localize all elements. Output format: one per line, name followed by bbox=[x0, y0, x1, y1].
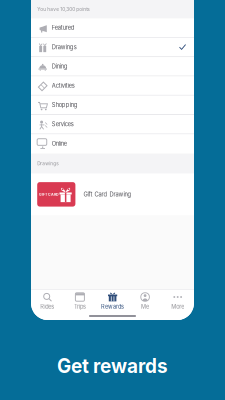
button[interactable]: GIFT CARD bbox=[31, 174, 194, 215]
staticText: More bbox=[171, 303, 184, 310]
staticText: Gift Card Drawing bbox=[83, 191, 131, 198]
button[interactable]: Trips bbox=[64, 290, 96, 312]
staticText: Rides bbox=[40, 303, 54, 310]
button[interactable]: Rides bbox=[31, 290, 64, 312]
staticText: GIFT CARD bbox=[39, 192, 59, 197]
staticText: Featured bbox=[52, 24, 75, 31]
button[interactable]: Services bbox=[31, 115, 194, 134]
staticText: Drawings bbox=[52, 44, 77, 50]
staticText: Me bbox=[141, 303, 149, 310]
button[interactable]: Online bbox=[31, 134, 194, 154]
staticText: Trips bbox=[74, 303, 86, 310]
staticText: Rewards bbox=[101, 303, 124, 310]
button[interactable]: Rewards bbox=[96, 290, 129, 312]
staticText: Get rewards bbox=[57, 354, 168, 377]
staticText: Shopping bbox=[52, 101, 78, 108]
button[interactable]: Drawings bbox=[31, 38, 194, 57]
staticText: Drawings bbox=[37, 161, 58, 166]
staticText: Services bbox=[52, 121, 74, 128]
button[interactable]: Featured bbox=[31, 18, 194, 38]
staticText: Activities bbox=[52, 82, 75, 89]
staticText: Dining bbox=[52, 63, 68, 70]
button[interactable]: Dining bbox=[31, 57, 194, 76]
button[interactable]: Me bbox=[129, 290, 161, 312]
button[interactable]: Activities bbox=[31, 76, 194, 96]
staticText: Online bbox=[52, 140, 67, 147]
staticText: You have 10,300 points bbox=[37, 6, 89, 12]
button[interactable]: More bbox=[161, 290, 194, 312]
button[interactable]: Shopping bbox=[31, 96, 194, 115]
